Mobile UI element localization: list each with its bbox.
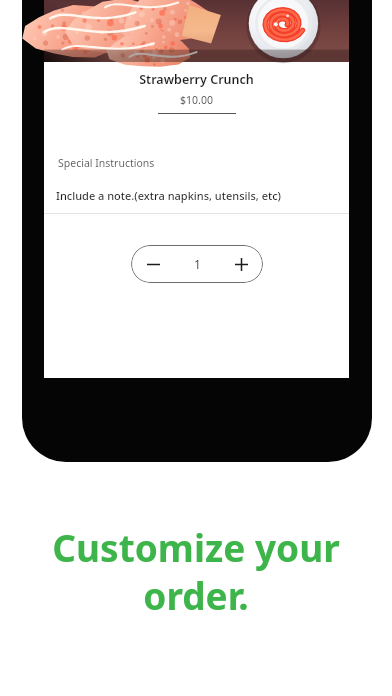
button[interactable]: Include a note.(extra napkins, utensils,… <box>56 188 282 203</box>
button[interactable]: Increase quantity <box>219 245 263 283</box>
staticText: Customize your order. <box>14 522 378 621</box>
staticText: Special Instructions <box>58 156 155 170</box>
staticText: Strawberry Crunch <box>44 71 349 88</box>
button[interactable]: Decrease quantity <box>131 245 175 283</box>
staticText: $10.00 <box>44 93 349 107</box>
staticText: 1 <box>194 256 201 272</box>
